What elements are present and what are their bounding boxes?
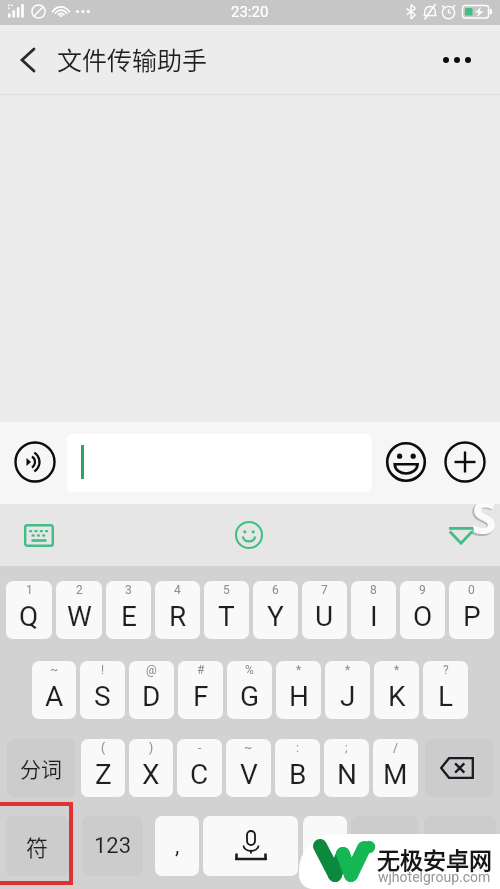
button[interactable]: Voice input — [11, 438, 59, 486]
staticText: G — [240, 680, 260, 713]
button[interactable]: 3 — [106, 581, 151, 639]
button[interactable]: ) — [129, 739, 173, 797]
staticText: * — [394, 663, 400, 677]
staticText: U — [315, 600, 334, 633]
button[interactable]: 7 — [302, 581, 347, 639]
button[interactable]: Keyboard — [14, 513, 64, 557]
button[interactable]: 4 — [155, 581, 200, 639]
staticText: T — [218, 600, 235, 633]
staticText: % — [245, 663, 254, 677]
button[interactable]: % — [227, 661, 272, 719]
staticText: 6 — [272, 583, 279, 597]
button[interactable]: Back — [0, 25, 52, 95]
button[interactable] — [67, 434, 372, 492]
button[interactable]: Emoji keyboard — [225, 513, 273, 557]
staticText: 1 — [26, 583, 33, 597]
staticText: R — [169, 600, 187, 633]
staticText: 3 — [125, 583, 132, 597]
staticText: V — [240, 758, 258, 791]
button[interactable]: - — [177, 739, 222, 797]
staticText: @ — [146, 663, 157, 677]
staticText: : — [296, 741, 299, 755]
staticText: 123 — [94, 833, 132, 859]
button[interactable]: More options — [428, 25, 486, 95]
staticText: 8 — [370, 583, 377, 597]
button[interactable]: ( — [81, 739, 125, 797]
staticText: 5 — [223, 583, 230, 597]
staticText: ( — [101, 741, 106, 755]
button[interactable]: 分词 — [7, 739, 75, 797]
button[interactable]: Space and voice input — [203, 816, 298, 876]
staticText: B — [289, 758, 307, 791]
staticText: 文件传输助手 — [57, 41, 208, 77]
button[interactable]: More functions — [441, 438, 489, 486]
staticText: 0 — [468, 583, 475, 597]
staticText: L — [438, 680, 454, 713]
button[interactable]: Hide keyboard — [437, 514, 485, 556]
button[interactable]: * — [276, 661, 321, 719]
button[interactable]: 6 — [253, 581, 298, 639]
staticText: ) — [149, 741, 154, 755]
button[interactable]: 123 — [82, 816, 143, 876]
staticText: 符 — [26, 830, 49, 862]
staticText: ! — [101, 663, 105, 677]
staticText: J — [340, 680, 356, 713]
button[interactable]: Backspace — [425, 739, 494, 797]
button[interactable]: ~ — [226, 739, 271, 797]
button[interactable]: / — [373, 739, 418, 797]
staticText: W — [67, 600, 92, 633]
staticText: F — [193, 680, 209, 713]
button[interactable]: * — [325, 661, 370, 719]
staticText: K — [388, 680, 406, 713]
staticText: H — [289, 680, 309, 713]
button[interactable]: Emoji — [382, 438, 430, 486]
button[interactable]: ; — [324, 739, 369, 797]
staticText: 23:20 — [231, 3, 269, 21]
button[interactable]: , — [155, 816, 199, 876]
button[interactable]: @ — [129, 661, 174, 719]
staticText: - — [198, 741, 202, 755]
staticText: Z — [95, 758, 112, 791]
staticText: S — [472, 504, 497, 547]
staticText: S — [94, 680, 111, 713]
staticText: * — [345, 663, 351, 677]
staticText: D — [142, 680, 161, 713]
staticText: 分词 — [20, 753, 62, 783]
button[interactable]: * — [374, 661, 419, 719]
staticText: ~ — [50, 663, 59, 677]
staticText: S — [470, 504, 496, 549]
button[interactable]: 5 — [204, 581, 249, 639]
staticText: 7 — [321, 583, 328, 597]
staticText: ~ — [244, 741, 253, 755]
button[interactable] — [424, 816, 496, 876]
staticText: # — [197, 663, 205, 677]
staticText: * — [296, 663, 302, 677]
staticText: X — [142, 758, 160, 791]
button[interactable]: 9 — [400, 581, 445, 639]
button[interactable]: 1 — [6, 581, 52, 639]
staticText: I — [370, 600, 378, 633]
button[interactable]: : — [275, 739, 320, 797]
staticText: 4 — [174, 583, 181, 597]
staticText: Q — [19, 600, 39, 633]
button[interactable]: 8 — [351, 581, 396, 639]
staticText: Y — [267, 600, 284, 633]
staticText: 2 — [76, 583, 83, 597]
button[interactable]: 2 — [56, 581, 102, 639]
button[interactable] — [351, 816, 418, 876]
button[interactable]: ! — [80, 661, 125, 719]
staticText: 9 — [419, 583, 426, 597]
button[interactable]: ~ — [32, 661, 76, 719]
staticText: P — [463, 600, 481, 633]
button[interactable]: 0 — [449, 581, 494, 639]
staticText: N — [337, 758, 357, 791]
button[interactable]: ? — [423, 661, 468, 719]
staticText: E — [121, 600, 137, 633]
button[interactable] — [303, 816, 347, 876]
staticText: A — [45, 680, 64, 713]
button[interactable]: # — [178, 661, 223, 719]
button[interactable]: 符 — [6, 816, 69, 876]
staticText: C — [190, 758, 209, 791]
staticText: / — [393, 741, 398, 755]
staticText: wjhotelgroup.com — [378, 869, 491, 885]
